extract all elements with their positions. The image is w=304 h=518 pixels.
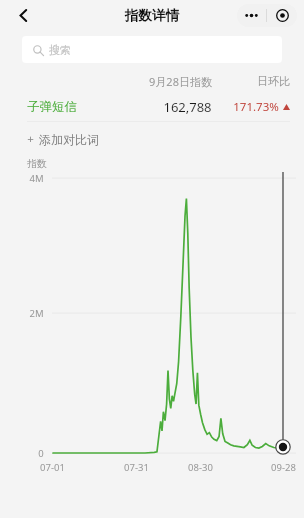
staticText: + — [27, 131, 34, 147]
staticText: 日环比 — [257, 74, 290, 88]
staticText: 07-31 — [124, 461, 149, 474]
button[interactable]: 搜索 — [22, 36, 282, 63]
button[interactable]: + — [0, 122, 304, 156]
staticText: 9月28日指数 — [149, 74, 212, 89]
staticText: 子弹短信 — [27, 99, 77, 115]
staticText: 指数 — [27, 157, 47, 170]
staticText: 162,788 — [163, 98, 212, 116]
staticText: 添加对比词 — [39, 132, 99, 147]
staticText: 08-30 — [188, 461, 213, 474]
button[interactable]: Back — [8, 0, 38, 30]
staticText: 指数详情 — [125, 7, 179, 24]
staticText: 0 — [38, 447, 44, 460]
staticText: 07-01 — [40, 461, 65, 474]
staticText: 4M — [29, 172, 44, 185]
button[interactable]: More options — [237, 4, 266, 27]
staticText: 搜索 — [49, 43, 71, 57]
staticText: 171.73% — [233, 99, 279, 115]
staticText: 2M — [29, 307, 44, 320]
button[interactable]: Close — [267, 4, 297, 27]
button[interactable]: 子弹短信 — [16, 93, 290, 121]
staticText: 09-28 — [271, 461, 296, 474]
